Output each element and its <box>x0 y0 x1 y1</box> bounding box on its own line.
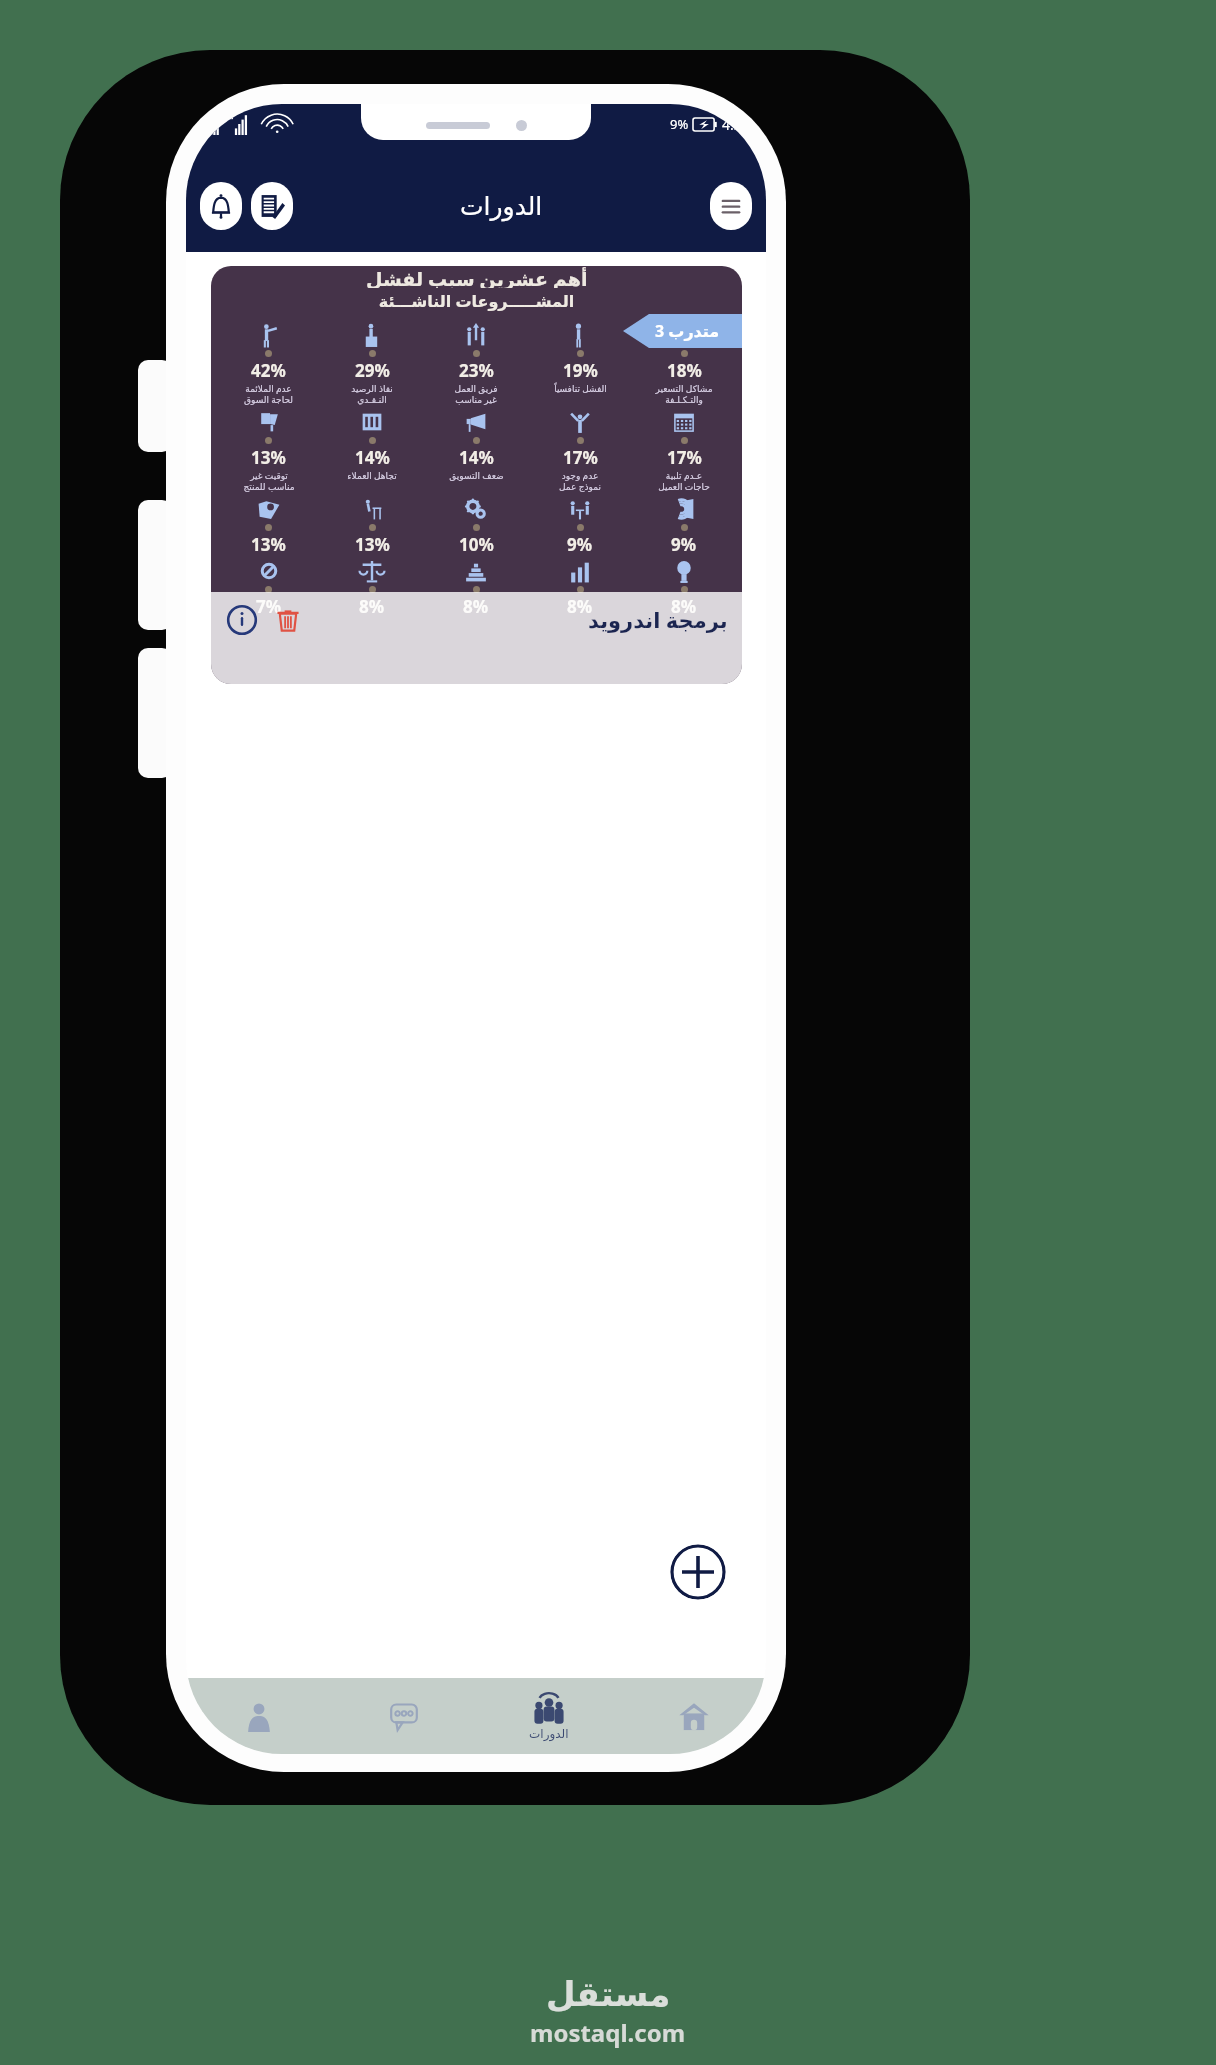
staticText: 4:37 <box>722 115 750 134</box>
button[interactable]: أهم عشرين سبب لفشل <box>211 266 742 684</box>
staticText: ضعف التسويق <box>449 469 504 481</box>
staticText: 8% <box>567 595 593 618</box>
button[interactable]: Messages <box>331 1678 476 1754</box>
staticText: مشاكل التسعير والتـكـلـفة <box>655 382 713 405</box>
staticText: أهم عشرين سبب لفشل <box>366 266 588 288</box>
staticText: الدورات <box>529 1727 569 1741</box>
button[interactable]: Profile <box>186 1678 331 1754</box>
staticText: 23% <box>459 359 494 382</box>
button[interactable]: Courses <box>476 1678 621 1754</box>
staticText: 14% <box>459 446 494 469</box>
staticText: فريق العمل غير مناسب <box>454 382 498 405</box>
button[interactable]: Home <box>621 1678 766 1754</box>
staticText: 13% <box>355 533 390 556</box>
staticText: 18% <box>667 359 702 382</box>
staticText: عدم الملائمة لحاجة السوق <box>244 382 293 405</box>
button[interactable]: Menu <box>710 182 752 230</box>
staticText: 7% <box>256 595 282 618</box>
button[interactable]: Delete <box>273 605 303 635</box>
staticText: 13% <box>251 533 286 556</box>
staticText: عـدم تلبية حاجات العميل <box>658 469 710 492</box>
staticText: 19% <box>563 359 598 382</box>
button[interactable]: Edit note <box>251 182 293 230</box>
staticText: 42% <box>251 359 286 382</box>
staticText: 17% <box>563 446 598 469</box>
button[interactable]: Info <box>225 603 259 637</box>
staticText: 9% <box>567 533 593 556</box>
staticText: تجاهل العملاء <box>347 469 397 481</box>
staticText: الفشل تنافسياً <box>554 382 607 394</box>
staticText: برمجة اندرويد <box>588 606 728 635</box>
staticText: 29% <box>355 359 390 382</box>
staticText: 17% <box>667 446 702 469</box>
staticText: الدورات <box>460 192 543 221</box>
staticText: 9% <box>670 115 689 133</box>
staticText: 8% <box>463 595 489 618</box>
staticText: توقيت غير مناسب للمنتج <box>243 469 295 492</box>
staticText: 10% <box>459 533 494 556</box>
staticText: مستقل <box>546 1974 671 2014</box>
staticText: 3 متدرب <box>655 320 720 342</box>
button[interactable]: Notifications <box>200 182 242 230</box>
staticText: 8% <box>671 595 697 618</box>
staticText: mostaql.com <box>530 2016 686 2049</box>
staticText: 9% <box>671 533 697 556</box>
staticText: نفاذ الرصيد النـقـدي <box>351 382 393 405</box>
staticText: 13% <box>251 446 286 469</box>
staticText: المشـــــروعات الناشـــئة <box>211 290 742 312</box>
staticText: 14% <box>355 446 390 469</box>
staticText: 8% <box>359 595 385 618</box>
staticText: عدم وجود نموذج عمل <box>559 469 601 492</box>
button[interactable]: Add course <box>670 1544 726 1600</box>
